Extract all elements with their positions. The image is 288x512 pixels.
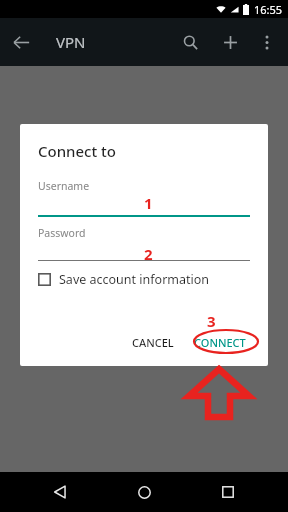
staticText: CONNECT [194,335,246,350]
staticText: 1 [144,193,153,213]
staticText: Connect to [38,141,117,161]
staticText: Password [38,226,86,240]
button[interactable]: Back [0,21,42,63]
button[interactable]: CONNECT [184,329,256,356]
button[interactable]: Save account information [38,271,210,288]
staticText: 2 [144,244,153,264]
staticText: Username [38,179,90,193]
button[interactable]: Recent apps [204,472,252,512]
staticText: VPN [56,32,86,52]
button[interactable]: CANCEL [122,329,184,356]
staticText: 16:55 [254,2,283,17]
button[interactable]: More options [250,25,284,59]
button[interactable]: Back [36,472,84,512]
button[interactable]: Add VPN profile [210,22,250,62]
button[interactable]: Search [170,22,210,62]
staticText: CANCEL [132,335,174,350]
button[interactable]: Home [120,472,168,512]
staticText: Save account information [59,271,210,288]
staticText: 3 [207,311,216,331]
